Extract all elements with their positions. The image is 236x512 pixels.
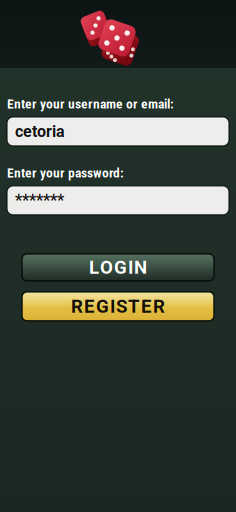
- staticText: LOGIN: [89, 256, 147, 278]
- staticText: Enter your username or email:: [7, 96, 174, 112]
- button[interactable]: REGISTER: [22, 292, 214, 321]
- button[interactable]: LOGIN: [22, 254, 214, 281]
- staticText: REGISTER: [71, 295, 165, 317]
- staticText: Enter your password:: [7, 165, 124, 181]
- staticText: cetoria: [15, 122, 65, 141]
- staticText: *******: [15, 191, 64, 210]
